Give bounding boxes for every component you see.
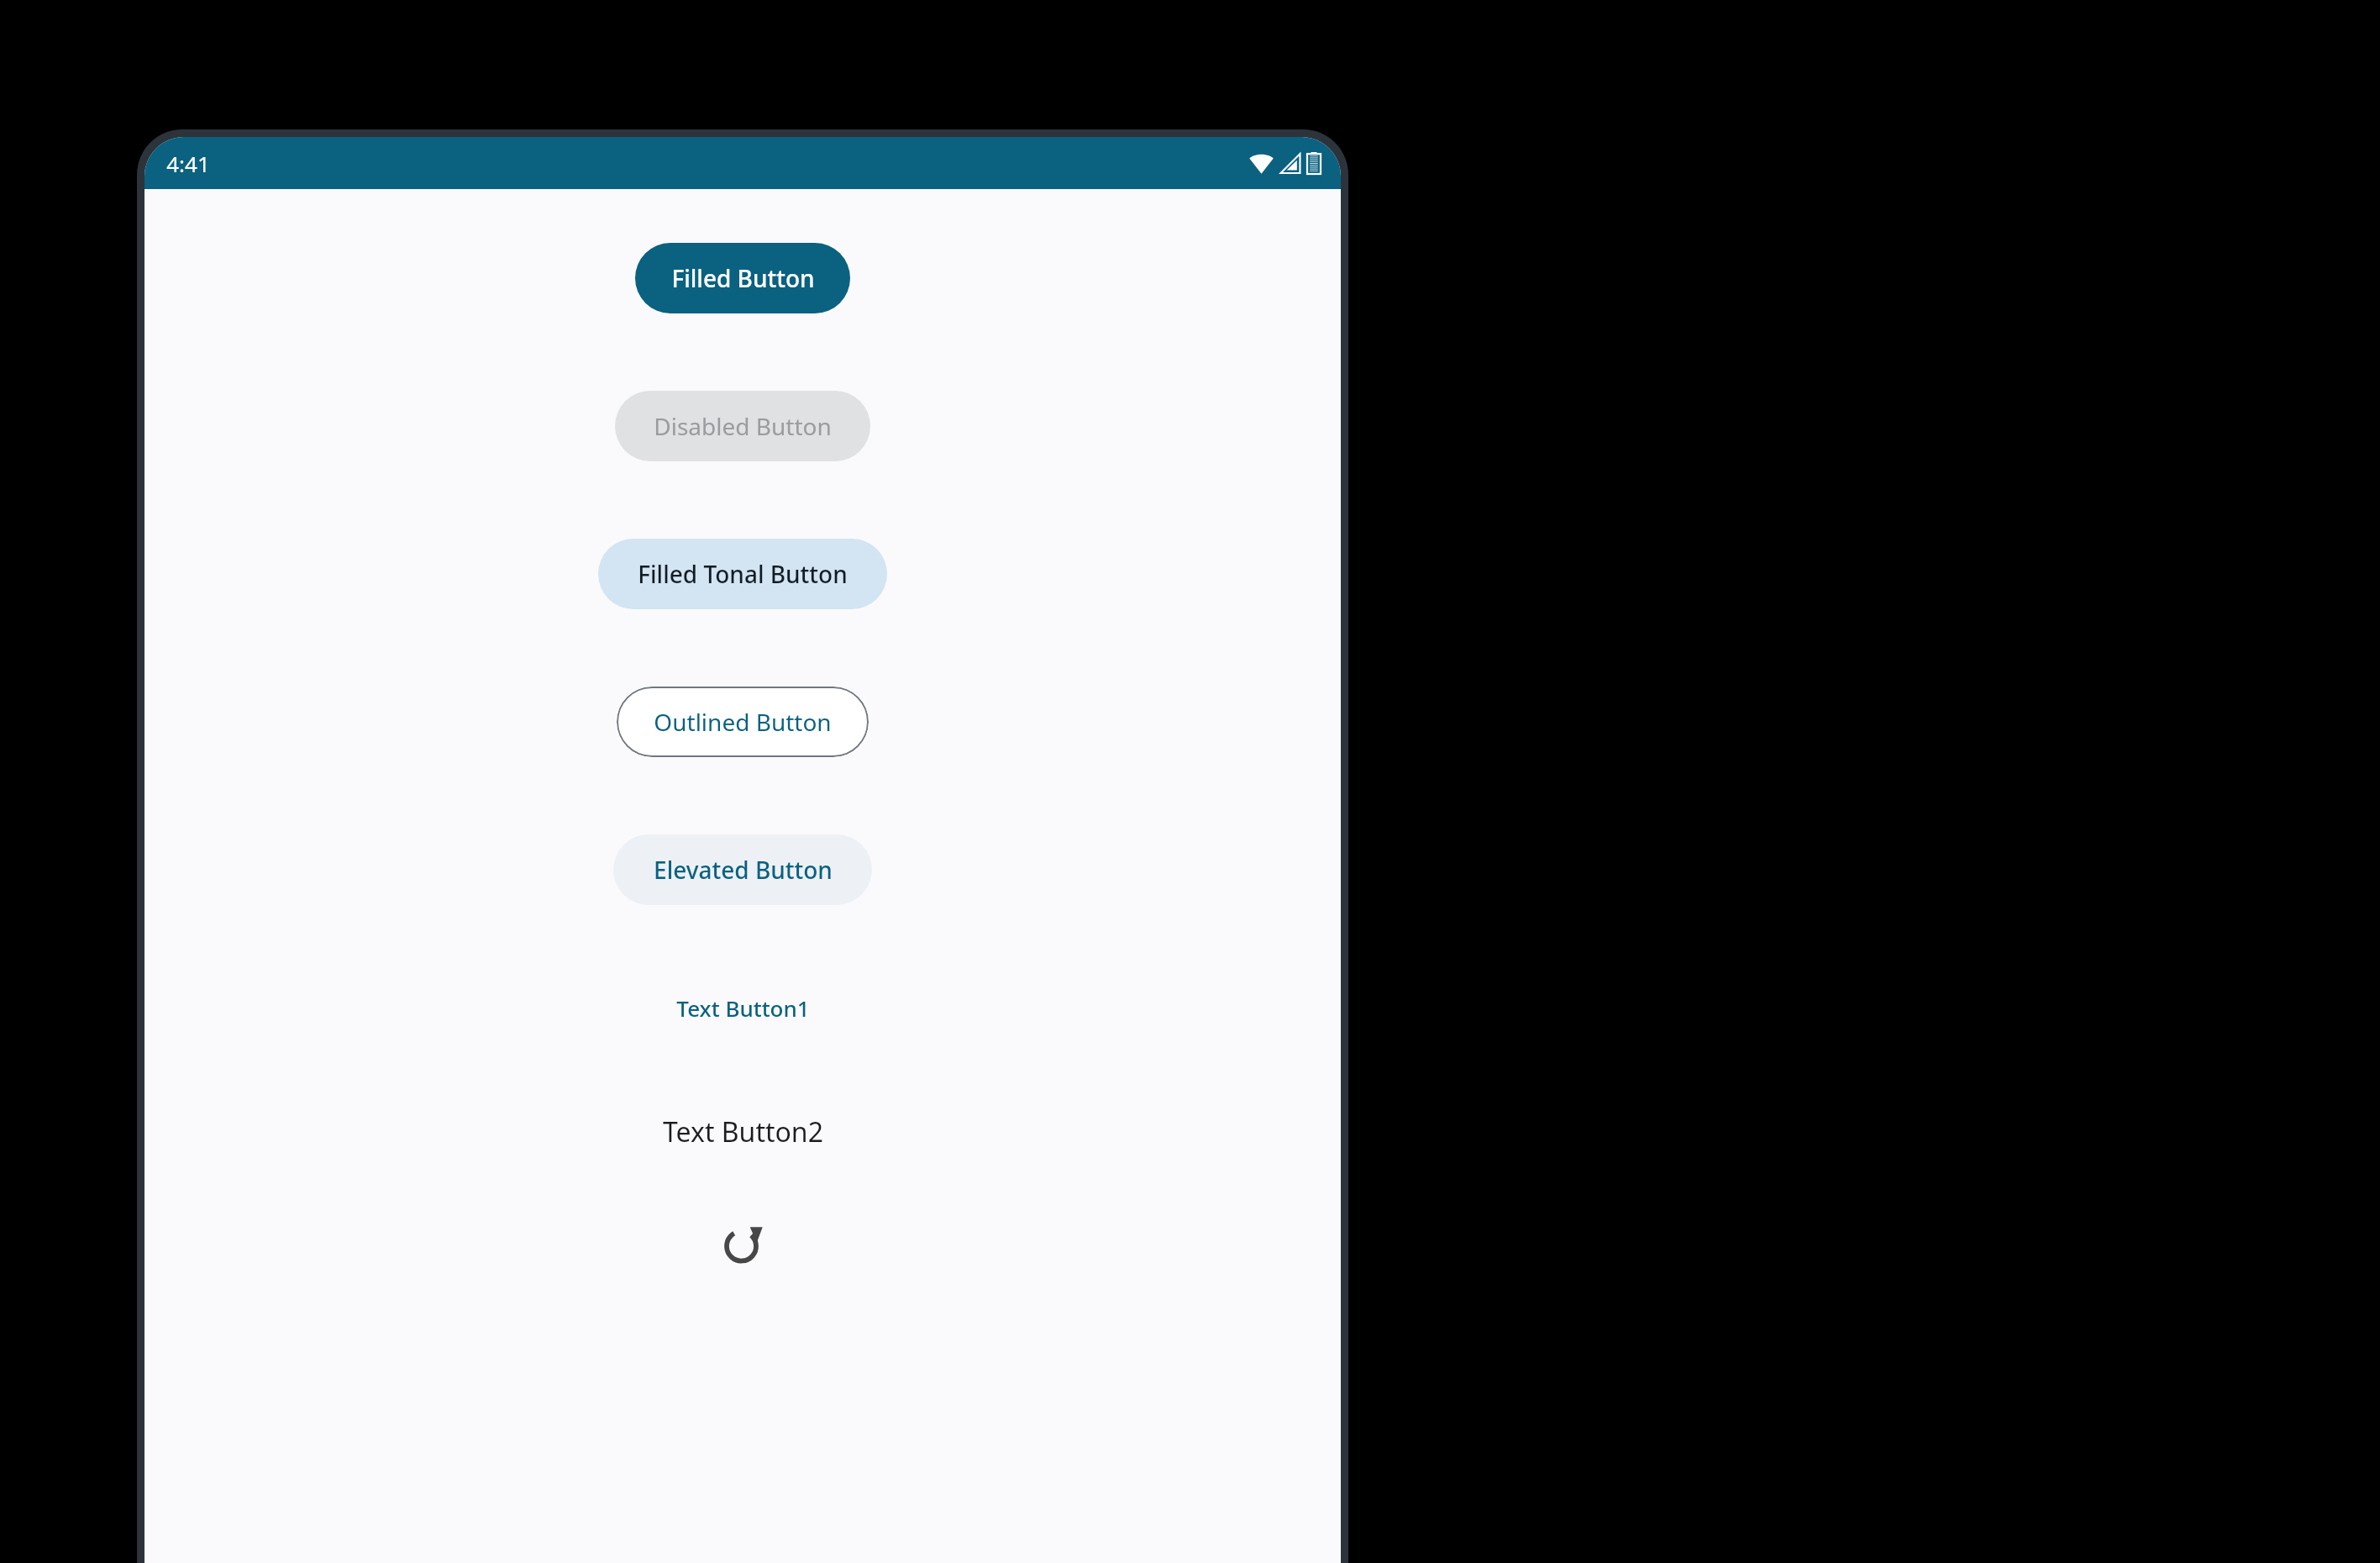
button[interactable]: Elevated Button — [613, 834, 872, 905]
staticText: Text Button1 — [676, 993, 810, 1023]
staticText: Filled Tonal Button — [638, 558, 848, 590]
button[interactable]: Filled Tonal Button — [598, 539, 887, 609]
button[interactable]: Outlined Button — [617, 687, 869, 757]
button[interactable]: Refresh — [714, 1216, 771, 1273]
staticText: Filled Button — [671, 262, 815, 294]
staticText: 4:41 — [166, 149, 210, 178]
staticText: Outlined Button — [654, 706, 832, 738]
staticText: Elevated Button — [654, 854, 833, 886]
button[interactable]: Filled Button — [635, 243, 850, 313]
button[interactable]: Text Button2 — [643, 1103, 843, 1160]
staticText: Disabled Button — [654, 410, 832, 442]
staticText: Text Button2 — [663, 1113, 823, 1150]
button[interactable]: Disabled Button — [615, 391, 870, 461]
button[interactable]: Text Button1 — [656, 979, 830, 1036]
